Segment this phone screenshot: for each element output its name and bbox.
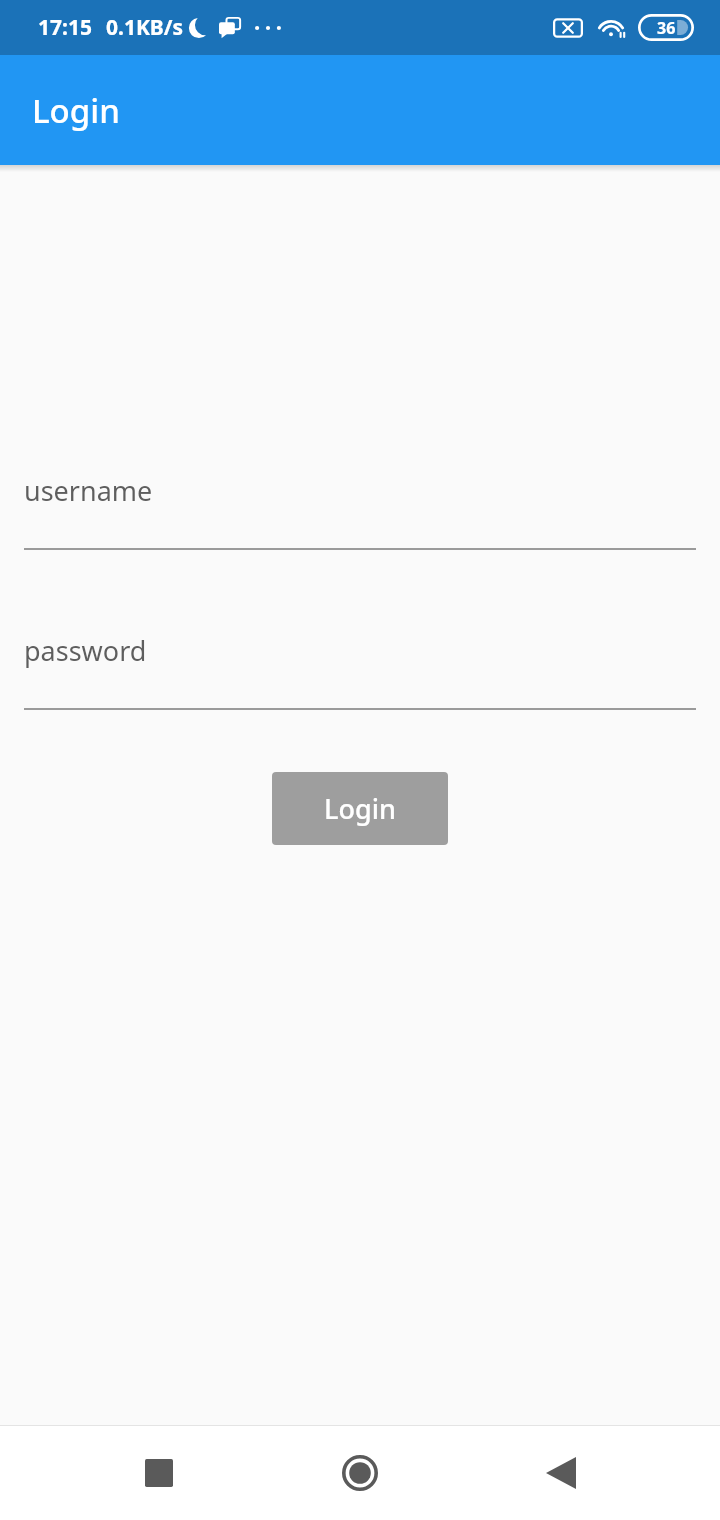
staticText: 17:15 xyxy=(38,13,92,42)
staticText: 36 xyxy=(657,17,676,39)
button[interactable]: Login xyxy=(272,772,448,845)
staticText: password xyxy=(24,632,147,669)
button[interactable]: Recents xyxy=(117,1431,201,1515)
staticText: Login xyxy=(32,88,120,133)
staticText: Login xyxy=(324,790,396,827)
button[interactable]: Back xyxy=(519,1431,603,1515)
button[interactable]: password xyxy=(24,632,696,710)
button[interactable]: username xyxy=(24,472,696,550)
button[interactable]: Home xyxy=(318,1431,402,1515)
staticText: 0.1KB/s xyxy=(106,13,184,42)
staticText: username xyxy=(24,472,153,509)
